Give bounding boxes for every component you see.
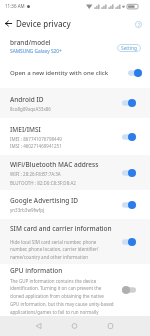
- staticText: SIM card and carrier information: [10, 224, 112, 233]
- button[interactable]: GPU information: [0, 264, 150, 316]
- staticText: IMEI : 867741076798449 IMSI : 4602714699…: [10, 136, 62, 149]
- button[interactable]: Switch on: [122, 169, 136, 177]
- staticText: ?: [138, 22, 140, 28]
- button[interactable]: Help: [132, 18, 145, 31]
- button[interactable]: WiFi/Bluetooth MAC address: [0, 155, 150, 190]
- button[interactable]: Android ID: [0, 88, 150, 118]
- button[interactable]: Open a new identity with one click: [0, 58, 150, 88]
- staticText: Device privacy: [16, 18, 71, 29]
- button[interactable]: Home: [66, 316, 82, 336]
- button[interactable]: Setting: [117, 44, 141, 52]
- button[interactable]: IMEI/IMSI: [0, 118, 150, 155]
- staticText: yn33rb3w9fwfpj: [10, 207, 45, 213]
- button[interactable]: Switch on: [122, 133, 136, 141]
- staticText: Hide local SIM card serial number, phone…: [10, 239, 99, 260]
- staticText: Setting: [121, 45, 137, 52]
- button[interactable]: Recents: [102, 316, 118, 336]
- staticText: Google Advertising ID: [10, 196, 79, 205]
- button[interactable]: Back: [30, 316, 46, 336]
- button[interactable]: Google Advertising ID: [0, 190, 150, 219]
- staticText: Android ID: [10, 95, 44, 104]
- button[interactable]: Switch on: [122, 99, 136, 107]
- staticText: 11:36 AM: [5, 3, 25, 9]
- staticText: The GUP information contains the device …: [10, 278, 114, 315]
- staticText: WiFi/Bluetooth MAC address: [10, 160, 99, 169]
- staticText: WIFI : 28:26:F8:B7:7A:3A BLUTOOTH : 82:D…: [10, 171, 76, 186]
- button[interactable]: Switch off: [122, 286, 136, 294]
- button[interactable]: Switch on: [122, 238, 136, 246]
- staticText: SAMSUNG Galaxy S20+: [10, 48, 62, 55]
- button[interactable]: Switch on: [122, 201, 136, 209]
- button[interactable]: SIM card and carrier information: [0, 219, 150, 264]
- staticText: brand/model: [10, 38, 51, 47]
- staticText: IMEI/IMSI: [10, 125, 41, 134]
- staticText: Open a new identity with one click: [10, 69, 124, 77]
- button[interactable]: Switch on: [128, 69, 142, 77]
- button[interactable]: Back: [2, 17, 14, 29]
- staticText: GPU information: [10, 266, 63, 275]
- staticText: 8co8g09xqxA33x86: [10, 106, 51, 112]
